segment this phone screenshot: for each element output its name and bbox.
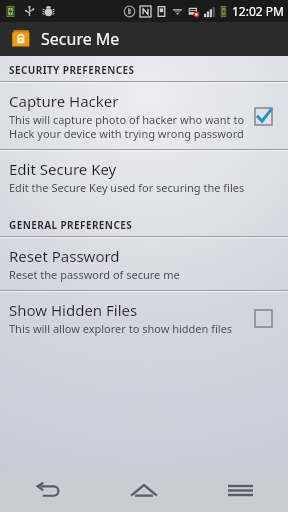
button[interactable]: Reset Password bbox=[0, 238, 288, 290]
staticText: This will allow explorer to show hidden … bbox=[9, 321, 233, 336]
staticText: 12:02 PM bbox=[232, 3, 284, 19]
button[interactable]: Menu bbox=[192, 468, 288, 512]
staticText: GENERAL PREFERENCES bbox=[9, 218, 133, 232]
staticText: Edit the Secure Key used for securing th… bbox=[9, 180, 245, 195]
button[interactable]: Enabled bbox=[246, 99, 280, 133]
staticText: Reset the password of secure me bbox=[9, 267, 180, 282]
staticText: This will capture photo of hacker who wa… bbox=[9, 112, 245, 141]
button[interactable]: Disabled bbox=[246, 301, 280, 335]
staticText: Edit Secure Key bbox=[9, 159, 117, 179]
staticText: Show Hidden Files bbox=[9, 300, 138, 320]
button[interactable]: Home bbox=[96, 468, 192, 512]
staticText: Capture Hacker bbox=[9, 91, 119, 111]
button[interactable]: Back bbox=[0, 468, 96, 512]
staticText: Reset Password bbox=[9, 246, 120, 266]
button[interactable]: Capture Hacker bbox=[0, 83, 288, 149]
staticText: SECURITY PREFERENCES bbox=[9, 63, 135, 77]
button[interactable]: Show Hidden Files bbox=[0, 292, 288, 344]
staticText: Secure Me bbox=[41, 28, 120, 50]
button[interactable]: Edit Secure Key bbox=[0, 151, 288, 203]
